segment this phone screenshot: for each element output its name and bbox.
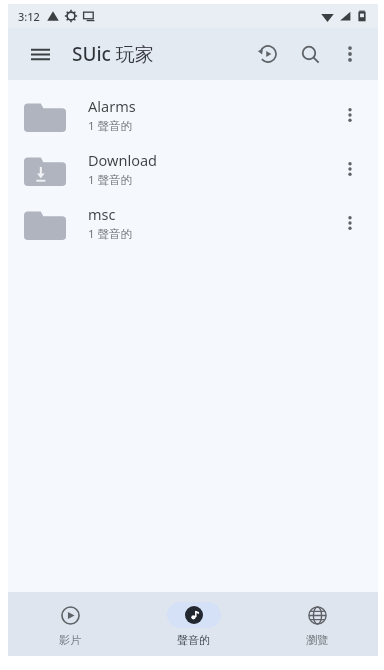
button[interactable]: More options — [332, 36, 368, 72]
button[interactable]: More options for msc — [332, 205, 368, 241]
button[interactable]: Videos — [8, 602, 132, 647]
staticText: msc — [88, 204, 116, 224]
button[interactable]: Recently played — [250, 36, 286, 72]
button[interactable]: Audio — [132, 602, 255, 647]
button[interactable]: Open navigation menu — [22, 36, 58, 72]
button[interactable]: Browse — [255, 602, 378, 647]
staticText: 1 聲音的 — [88, 172, 133, 188]
staticText: 瀏覽 — [306, 633, 328, 647]
staticText: 聲音的 — [177, 633, 210, 647]
staticText: 1 聲音的 — [88, 226, 133, 242]
staticText: 3:12 — [18, 9, 40, 24]
button[interactable]: More options for Alarms — [332, 97, 368, 133]
staticText: 1 聲音的 — [88, 118, 133, 134]
staticText: Alarms — [88, 96, 136, 116]
button[interactable]: More options for Download — [332, 151, 368, 187]
button[interactable]: Download — [8, 142, 378, 196]
staticText: Download — [88, 150, 157, 170]
button[interactable]: Alarms — [8, 88, 378, 142]
button[interactable]: msc — [8, 196, 378, 250]
staticText: 影片 — [59, 633, 81, 647]
staticText: SUic 玩家 — [72, 41, 154, 67]
button[interactable]: Search — [292, 36, 328, 72]
